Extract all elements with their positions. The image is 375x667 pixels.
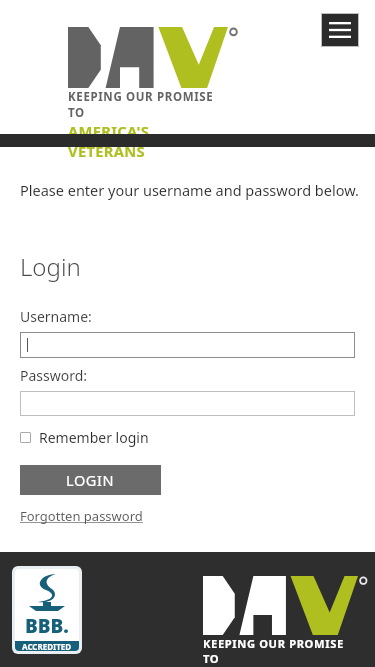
button[interactable]: BBB Accredited Charity: [15, 569, 79, 651]
staticText: KEEPING OUR PROMISE TO: [203, 636, 358, 666]
button[interactable]: Menu: [322, 14, 358, 46]
staticText: BBB.: [25, 613, 69, 639]
staticText: LOGIN: [66, 470, 115, 490]
button[interactable]: [20, 391, 355, 416]
staticText: Password:: [20, 366, 88, 385]
button[interactable]: [20, 332, 355, 358]
staticText: ACCREDITED: [22, 641, 72, 651]
staticText: KEEPING OUR PROMISE TO: [68, 89, 228, 121]
staticText: Login: [20, 250, 81, 283]
button[interactable]: Forgotten password: [20, 507, 143, 525]
staticText: Remember login: [39, 428, 149, 447]
staticText: Username:: [20, 307, 92, 326]
button[interactable]: LOGIN: [20, 465, 161, 495]
staticText: AMERICA'S VETERANS: [68, 121, 228, 161]
button[interactable]: Remember login: [20, 428, 149, 447]
staticText: Please enter your username and password …: [20, 180, 359, 200]
